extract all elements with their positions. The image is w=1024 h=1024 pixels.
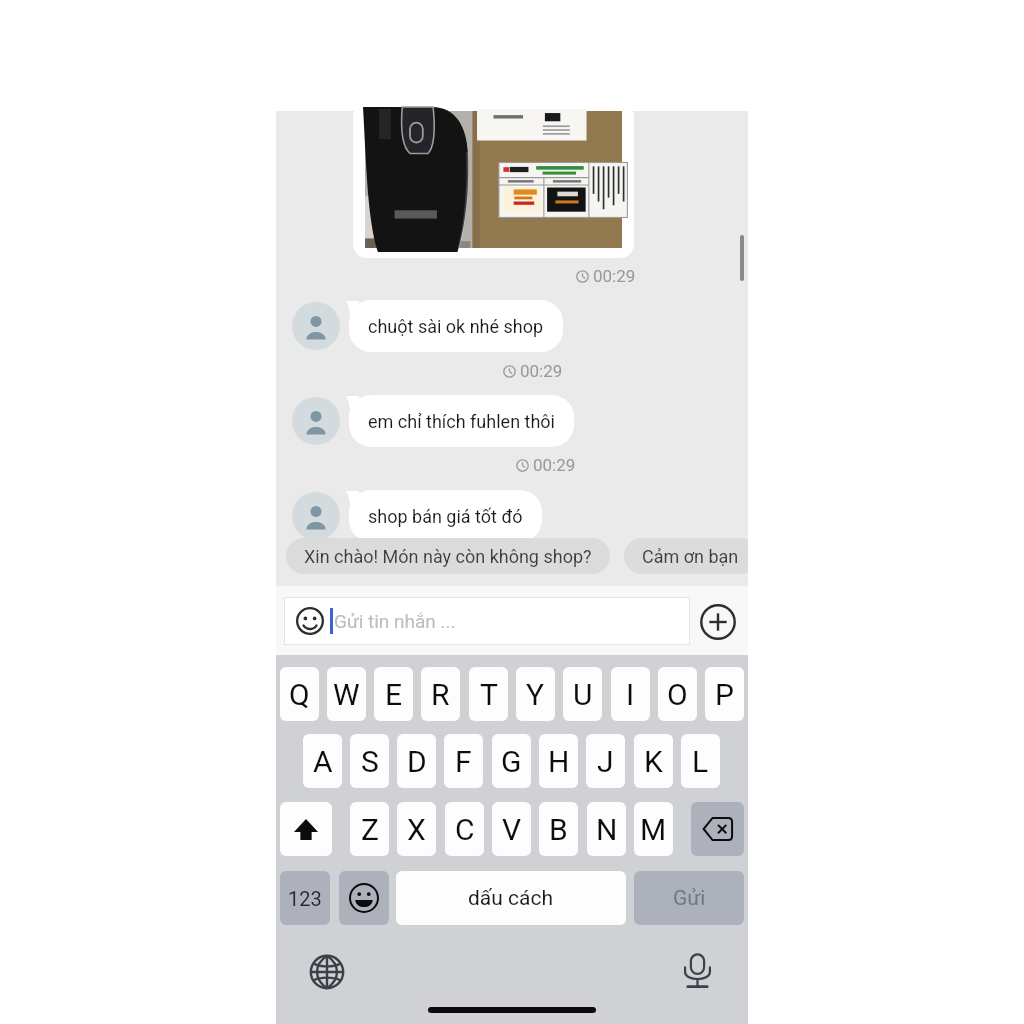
button[interactable]: Z <box>350 802 389 856</box>
button[interactable] <box>353 103 634 258</box>
button[interactable]: W <box>327 667 366 721</box>
button[interactable]: H <box>539 734 578 788</box>
button[interactable]: Voice input <box>679 953 715 989</box>
staticText: B <box>549 812 568 847</box>
staticText: Gửi <box>673 886 706 911</box>
staticText: 00:29 <box>533 455 576 475</box>
staticText: chuột sài ok nhé shop <box>368 316 544 337</box>
button[interactable]: Change keyboard language <box>309 954 345 990</box>
button[interactable]: S <box>350 734 389 788</box>
staticText: Q <box>289 677 310 712</box>
staticText: M <box>640 812 667 847</box>
button[interactable]: V <box>492 802 531 856</box>
button[interactable]: Cảm ơn bạn nhiều nhé <box>624 538 748 574</box>
staticText: dấu cách <box>468 886 554 911</box>
staticText: J <box>597 744 614 779</box>
button[interactable]: 123 <box>280 871 330 925</box>
button[interactable]: J <box>586 734 625 788</box>
button[interactable]: Gửi tin nhắn ... <box>284 597 690 645</box>
button[interactable]: I <box>611 667 650 721</box>
staticText: U <box>573 677 593 712</box>
button[interactable]: L <box>681 734 720 788</box>
button[interactable]: R <box>421 667 460 721</box>
button[interactable]: A <box>303 734 342 788</box>
staticText: P <box>715 677 734 712</box>
button[interactable]: Y <box>516 667 555 721</box>
staticText: D <box>407 744 427 779</box>
staticText: Cảm ơn bạn nhiều nhé <box>642 546 740 567</box>
button[interactable]: X <box>397 802 436 856</box>
button[interactable]: Gửi <box>634 871 744 925</box>
staticText: V <box>502 812 522 847</box>
button[interactable]: Attach <box>700 604 736 640</box>
button[interactable]: T <box>469 667 508 721</box>
button[interactable]: Q <box>280 667 319 721</box>
staticText: F <box>455 744 472 779</box>
staticText: N <box>596 812 618 847</box>
staticText: T <box>480 677 498 712</box>
staticText: shop bán giá tốt đó <box>368 506 523 527</box>
button[interactable]: Xin chào! Món này còn không shop? <box>286 538 610 574</box>
button[interactable]: P <box>705 667 744 721</box>
staticText: K <box>644 744 663 779</box>
button[interactable]: F <box>444 734 483 788</box>
staticText: Gửi tin nhắn ... <box>334 610 456 632</box>
staticText: S <box>361 744 379 779</box>
button[interactable]: Emoji keyboard <box>339 871 389 925</box>
button[interactable]: shop bán giá tốt đó <box>349 490 542 542</box>
button[interactable]: K <box>634 734 673 788</box>
button[interactable]: U <box>563 667 602 721</box>
button[interactable]: B <box>539 802 578 856</box>
button[interactable]: D <box>397 734 436 788</box>
staticText: C <box>455 812 475 847</box>
staticText: 00:29 <box>520 361 563 381</box>
button[interactable]: C <box>445 802 484 856</box>
button[interactable]: N <box>587 802 626 856</box>
staticText: G <box>501 744 522 779</box>
button[interactable]: chuột sài ok nhé shop <box>349 300 563 352</box>
staticText: O <box>667 677 688 712</box>
staticText: em chỉ thích fuhlen thôi <box>368 411 555 432</box>
button[interactable]: em chỉ thích fuhlen thôi <box>349 395 574 447</box>
staticText: X <box>407 812 426 847</box>
staticText: A <box>313 744 333 779</box>
staticText: 00:29 <box>593 266 636 286</box>
staticText: L <box>692 744 709 779</box>
staticText: W <box>333 677 360 712</box>
staticText: Z <box>361 812 379 847</box>
button[interactable]: M <box>634 802 673 856</box>
staticText: I <box>626 677 635 712</box>
staticText: 123 <box>288 887 322 910</box>
staticText: H <box>548 744 570 779</box>
button[interactable]: dấu cách <box>396 871 626 925</box>
button[interactable]: Shift <box>280 802 332 856</box>
staticText: Xin chào! Món này còn không shop? <box>304 546 592 567</box>
button[interactable]: Backspace <box>691 802 744 856</box>
button[interactable]: O <box>658 667 697 721</box>
button[interactable]: G <box>492 734 531 788</box>
button[interactable]: E <box>374 667 413 721</box>
staticText: Y <box>526 677 545 712</box>
staticText: E <box>385 677 403 712</box>
staticText: R <box>431 677 450 712</box>
